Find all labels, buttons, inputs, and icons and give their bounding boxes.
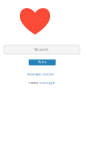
staticText: Home [38,60,47,64]
staticText: Powered by [28,81,43,85]
button[interactable]: Home [29,59,56,65]
staticText: Blogger. [43,81,55,85]
button[interactable]: View web version [27,73,54,76]
staticText: No posts. [34,48,49,51]
button[interactable]: Blogger. [43,81,55,85]
staticText: View web version [27,73,54,76]
